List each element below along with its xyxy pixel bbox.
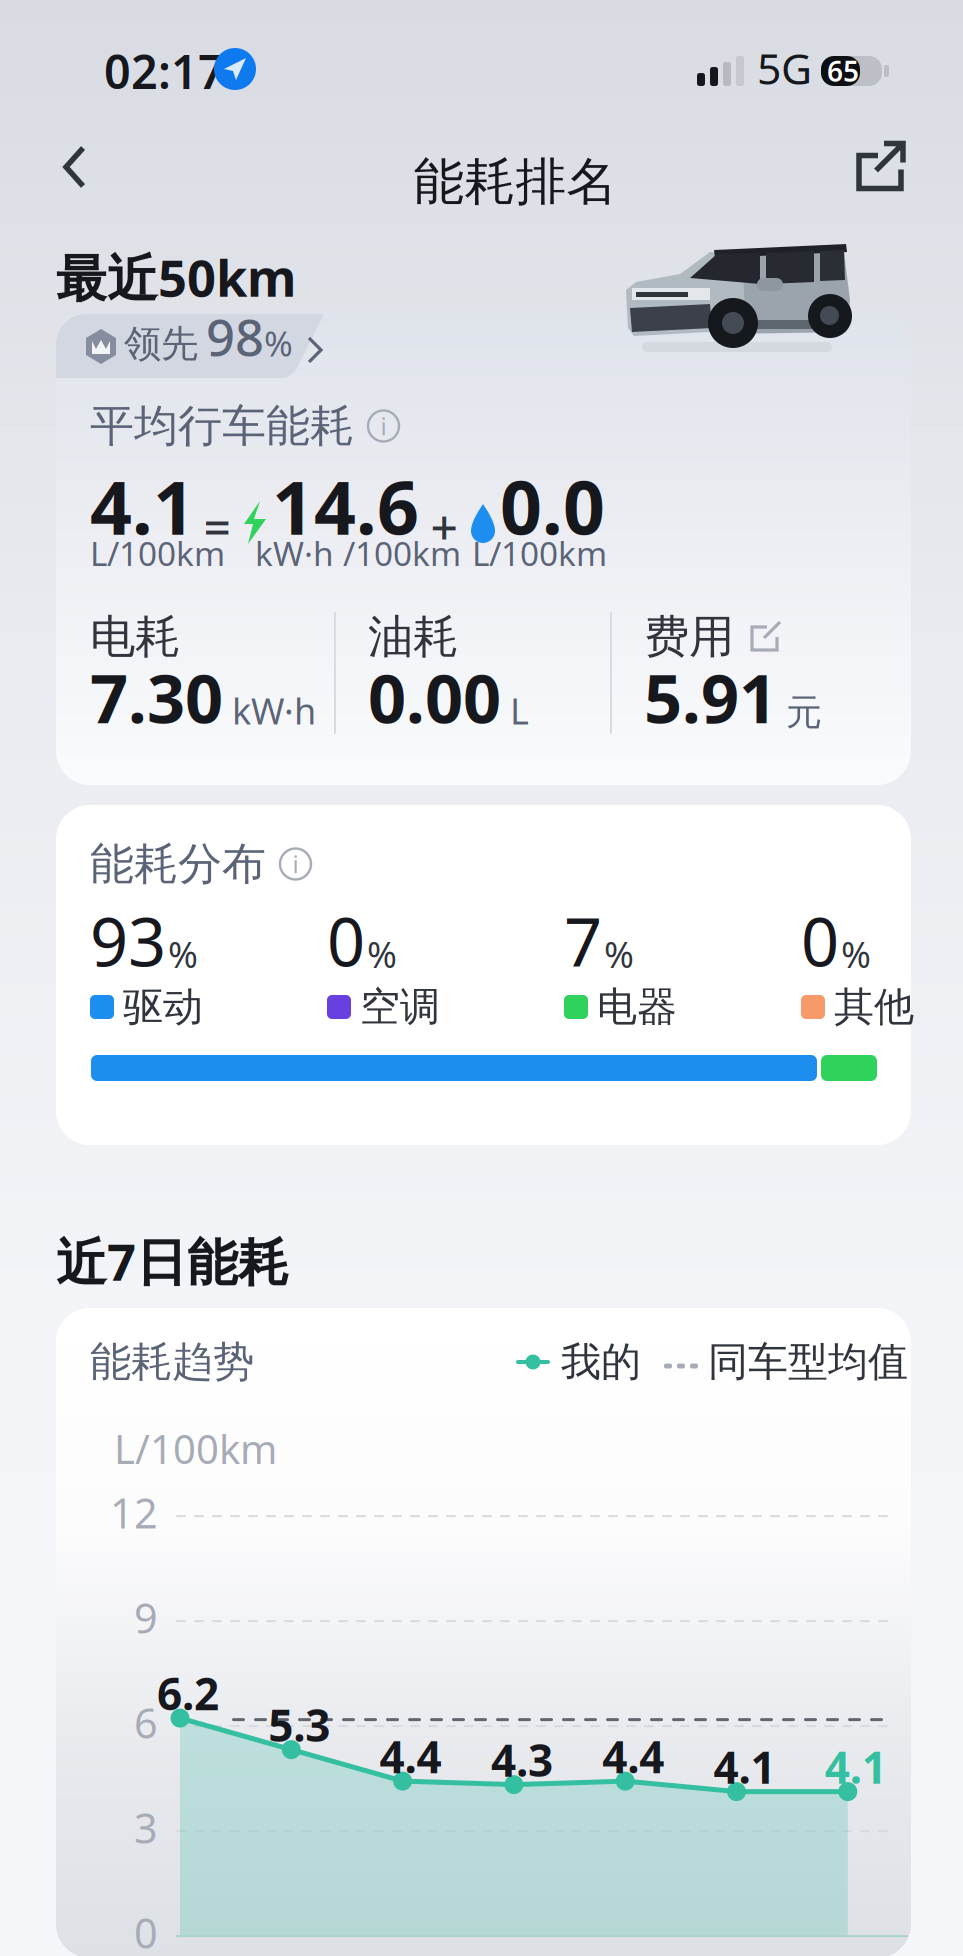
staticText: 能耗排名 xyxy=(413,151,617,213)
staticText: 4.4 xyxy=(602,1727,664,1785)
staticText: 12 xyxy=(110,1485,158,1540)
staticText: 0 xyxy=(801,896,839,985)
staticText: 7.30 xyxy=(90,653,223,741)
staticText: 5.91 xyxy=(644,653,777,741)
staticText: 领先 xyxy=(124,321,198,367)
staticText: L xyxy=(510,687,529,734)
staticText: 0.00 xyxy=(368,653,501,741)
staticText: 5G xyxy=(757,40,812,96)
staticText: 4.1 xyxy=(90,458,195,555)
button[interactable]: 编辑费用 xyxy=(748,618,784,656)
staticText: + xyxy=(430,494,457,558)
staticText: i xyxy=(380,410,386,442)
staticText: 98 xyxy=(206,303,264,370)
staticText: 电器 xyxy=(597,982,677,1031)
staticText: 空调 xyxy=(360,982,440,1031)
button[interactable]: 领先 xyxy=(56,314,356,382)
staticText: L/100km xyxy=(472,531,607,575)
staticText: % xyxy=(264,320,293,366)
staticText: 9 xyxy=(134,1590,158,1645)
staticText: L/100km xyxy=(114,1422,277,1475)
staticText: 油耗 xyxy=(368,609,458,665)
staticText: % xyxy=(168,930,198,978)
staticText: 同车型均值 xyxy=(708,1337,908,1386)
staticText: L/100km xyxy=(90,531,225,575)
staticText: 近7日能耗 xyxy=(56,1227,289,1295)
staticText: 电耗 xyxy=(90,609,180,665)
staticText: 最近50km xyxy=(56,243,296,311)
staticText: 0 xyxy=(327,896,365,985)
staticText: 我的 xyxy=(561,1337,641,1386)
staticText: 4.1 xyxy=(825,1737,887,1796)
staticText: 6.2 xyxy=(157,1664,219,1722)
staticText: 其他 xyxy=(834,982,914,1031)
staticText: % xyxy=(604,930,634,978)
staticText: 3 xyxy=(134,1800,158,1855)
staticText: 驱动 xyxy=(123,982,203,1031)
button[interactable]: 返回 xyxy=(34,114,115,220)
staticText: i xyxy=(292,848,298,880)
staticText: 14.6 xyxy=(272,458,419,555)
staticText: 元 xyxy=(786,690,822,734)
button[interactable]: 分享 xyxy=(831,113,929,220)
staticText: 6 xyxy=(134,1695,158,1750)
staticText: 65 xyxy=(827,52,859,90)
staticText: = xyxy=(203,494,230,558)
staticText: 4.3 xyxy=(491,1730,553,1789)
staticText: % xyxy=(367,930,397,978)
staticText: 平均行车能耗 xyxy=(90,399,354,453)
staticText: 能耗分布 xyxy=(90,837,266,891)
staticText: 能耗趋势 xyxy=(90,1337,254,1387)
staticText: 02:17 xyxy=(104,40,225,102)
staticText: 4.1 xyxy=(713,1737,775,1796)
staticText: kW·h /100km xyxy=(255,531,461,575)
staticText: kW·h xyxy=(232,687,316,734)
staticText: 0 xyxy=(134,1905,158,1956)
staticText: 93 xyxy=(90,896,166,985)
staticText: 0.0 xyxy=(500,458,605,555)
staticText: 7 xyxy=(564,896,602,985)
staticText: % xyxy=(841,930,871,978)
staticText: 4.4 xyxy=(380,1727,442,1785)
staticText: 费用 xyxy=(644,609,734,665)
staticText: 5.3 xyxy=(268,1695,330,1754)
